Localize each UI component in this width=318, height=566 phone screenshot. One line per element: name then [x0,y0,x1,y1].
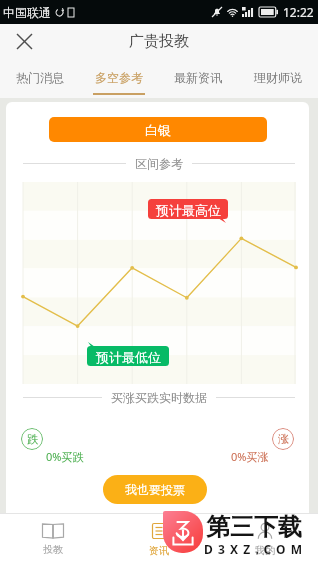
staticText: 跌 [27,432,38,446]
staticText: 投教 [43,543,63,556]
button[interactable]: 资讯 [106,513,212,566]
staticText: 最新资讯 [174,70,222,85]
button[interactable]: 最新资讯 [158,58,238,98]
button[interactable]: 跌 [21,428,43,450]
staticText: 热门消息 [16,70,64,85]
button[interactable]: 投教 [0,513,106,566]
staticText: 预计最高位 [156,202,221,218]
staticText: 涨 [278,432,289,446]
button[interactable]: 热门消息 [0,58,79,98]
staticText: 买涨买跌实时数据 [111,390,207,405]
button[interactable]: Close [0,24,48,58]
staticText: 多空参考 [95,70,143,85]
staticText: 0%买跌 [46,449,84,464]
button[interactable]: 白银 [49,117,267,142]
staticText: D3XZ.COM [204,541,308,557]
staticText: 中国联通 [3,5,51,20]
staticText: 第三下载 [206,512,302,542]
staticText: 区间参考 [135,156,183,171]
staticText: 12:22 [283,4,314,20]
staticText: 预计最低位 [96,349,161,365]
staticText: 0%买涨 [231,449,269,464]
staticText: 资讯 [149,544,169,557]
staticText: 我的 [255,544,275,557]
staticText: 我也要投票 [125,482,185,497]
staticText: 广贵投教 [129,32,189,51]
button[interactable]: 涨 [272,428,294,450]
button[interactable]: 多空参考 [79,58,158,98]
staticText: 理财师说 [254,70,302,85]
button[interactable]: 我的 [212,513,318,566]
staticText: 白银 [145,122,171,138]
button[interactable]: 我也要投票 [103,475,207,504]
button[interactable]: 理财师说 [238,58,318,98]
